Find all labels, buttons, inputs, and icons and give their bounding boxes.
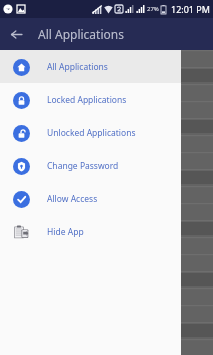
button[interactable]: Unlocked Applications xyxy=(0,116,181,149)
staticText: Allow Access xyxy=(47,193,98,205)
staticText: 12:01 PM xyxy=(171,3,210,15)
staticText: Change Password xyxy=(47,160,119,172)
staticText: All Applications xyxy=(38,26,124,42)
button[interactable]: Change Password xyxy=(0,149,181,182)
staticText: Locked Applications xyxy=(47,94,127,106)
button[interactable]: Locked Applications xyxy=(0,83,181,116)
button[interactable]: All Applications xyxy=(0,50,181,83)
staticText: 27% xyxy=(147,5,159,13)
staticText: Hide App xyxy=(47,226,84,238)
staticText: Unlocked Applications xyxy=(47,127,136,139)
button[interactable]: Allow Access xyxy=(0,182,181,215)
button[interactable]: Back xyxy=(0,18,32,50)
staticText: All Applications xyxy=(47,61,108,73)
button[interactable]: Hide App xyxy=(0,215,181,248)
